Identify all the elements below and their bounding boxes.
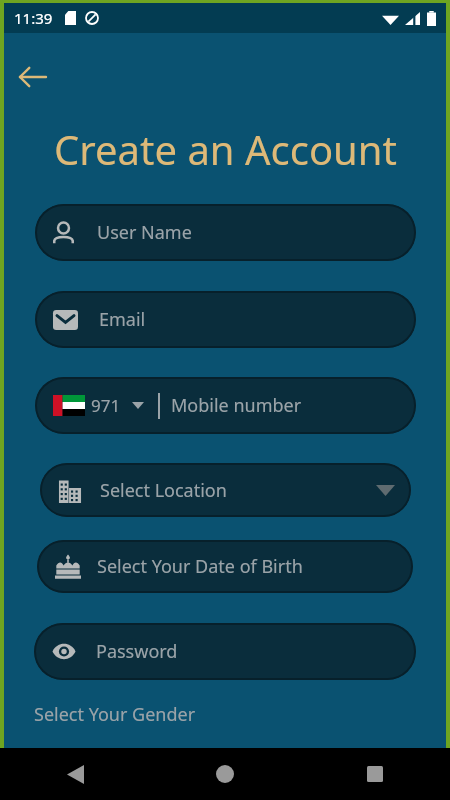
staticText: Select Your Date of Birth (97, 554, 303, 579)
button[interactable]: Home (150, 748, 300, 800)
staticText: Mobile number (171, 393, 302, 418)
button[interactable]: Back (14, 59, 50, 95)
button[interactable]: Recent apps (300, 748, 450, 800)
staticText: Create an Account (54, 122, 397, 176)
button[interactable]: Select Location (40, 463, 411, 517)
button[interactable]: User Name (35, 204, 416, 261)
staticText: Select Location (100, 478, 227, 503)
staticText: 11:39 (14, 8, 53, 28)
staticText: 971 (91, 394, 121, 417)
button[interactable]: Select Your Date of Birth (37, 540, 413, 593)
button[interactable]: 971 (35, 377, 416, 434)
staticText: User Name (97, 220, 192, 245)
button[interactable]: Email (35, 291, 416, 348)
staticText: Password (96, 639, 178, 664)
button[interactable]: Password (34, 623, 416, 680)
button[interactable]: Back (0, 748, 150, 800)
staticText: Select Your Gender (34, 702, 196, 727)
staticText: Email (99, 307, 146, 332)
